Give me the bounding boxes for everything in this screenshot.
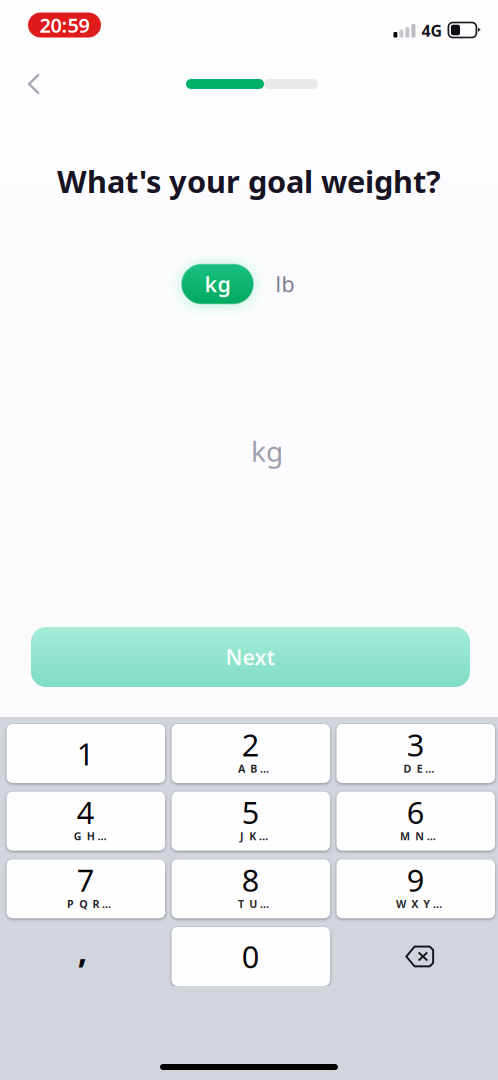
button[interactable]: lb: [263, 263, 307, 304]
button[interactable]: 6: [336, 792, 495, 851]
staticText: 8: [242, 859, 260, 900]
button[interactable]: kg: [181, 263, 254, 304]
staticText: kg: [204, 270, 230, 298]
button[interactable]: 5: [171, 792, 330, 851]
button[interactable]: 2: [171, 724, 330, 783]
staticText: TUV: [238, 897, 269, 911]
staticText: 1: [77, 733, 95, 774]
button[interactable]: 1: [7, 724, 165, 783]
button[interactable]: 0: [171, 927, 330, 986]
staticText: 6: [407, 792, 425, 832]
staticText: 4G: [421, 20, 442, 41]
staticText: 20:59: [39, 12, 89, 38]
staticText: 9: [407, 859, 425, 900]
button[interactable]: 7: [7, 859, 165, 918]
button[interactable]: 8: [171, 859, 330, 918]
staticText: ABC: [238, 761, 269, 776]
staticText: lb: [275, 270, 294, 298]
button[interactable]: Back: [12, 62, 56, 106]
staticText: DEF: [403, 761, 434, 776]
staticText: JKL: [240, 829, 267, 843]
button[interactable]: 4: [7, 792, 165, 851]
staticText: 3: [407, 724, 425, 765]
button[interactable]: Next: [31, 627, 470, 687]
staticText: 0: [242, 936, 260, 977]
staticText: 5: [242, 792, 260, 832]
staticText: ,: [78, 928, 88, 973]
button[interactable]: Delete: [336, 927, 495, 986]
staticText: 2: [242, 724, 260, 765]
staticText: Next: [225, 643, 275, 671]
staticText: MNO: [400, 829, 437, 843]
staticText: What's your goal weight?: [57, 161, 441, 201]
staticText: PQRS: [67, 897, 111, 911]
staticText: 4: [77, 792, 95, 832]
staticText: WXYZ: [396, 897, 441, 911]
button[interactable]: 9: [336, 859, 495, 918]
staticText: 7: [77, 859, 95, 900]
button[interactable]: 3: [336, 724, 495, 783]
button[interactable]: Comma: [7, 927, 165, 986]
staticText: kg: [251, 432, 283, 470]
staticText: GHI: [74, 829, 104, 843]
